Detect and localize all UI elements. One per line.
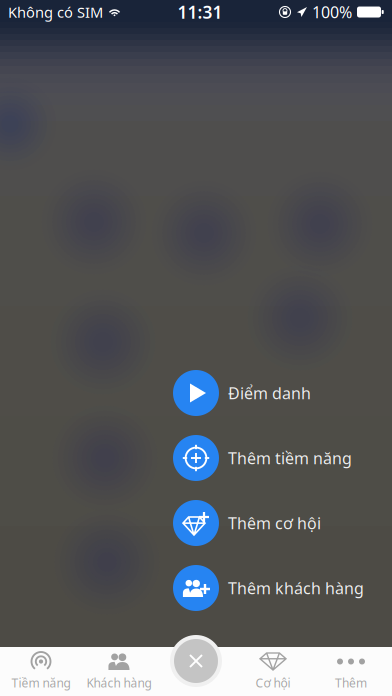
staticText: Tiềm năng	[11, 675, 70, 691]
button[interactable]: Khách hàng	[80, 647, 158, 696]
staticText: Không có SIM	[8, 2, 103, 22]
button[interactable]: Thêm tiềm năng	[0, 432, 392, 484]
button[interactable]: Thêm khách hàng	[0, 562, 392, 614]
staticText: Thêm	[335, 675, 367, 691]
staticText: Điểm danh	[228, 382, 311, 404]
staticText: Thêm tiềm năng	[228, 447, 352, 469]
button[interactable]: Thêm	[312, 647, 390, 696]
staticText: Thêm cơ hội	[228, 512, 321, 534]
button[interactable]: Tiềm năng	[2, 647, 80, 696]
button[interactable]: Close menu	[170, 635, 222, 687]
staticText: Cơ hội	[255, 675, 290, 691]
staticText: 11:31	[177, 0, 222, 23]
staticText: Thêm khách hàng	[228, 577, 364, 599]
button[interactable]: Thêm cơ hội	[0, 497, 392, 549]
button[interactable]: Điểm danh	[0, 367, 392, 419]
button[interactable]: Cơ hội	[234, 647, 312, 696]
staticText: Khách hàng	[86, 675, 151, 691]
staticText: 100%	[312, 1, 352, 23]
